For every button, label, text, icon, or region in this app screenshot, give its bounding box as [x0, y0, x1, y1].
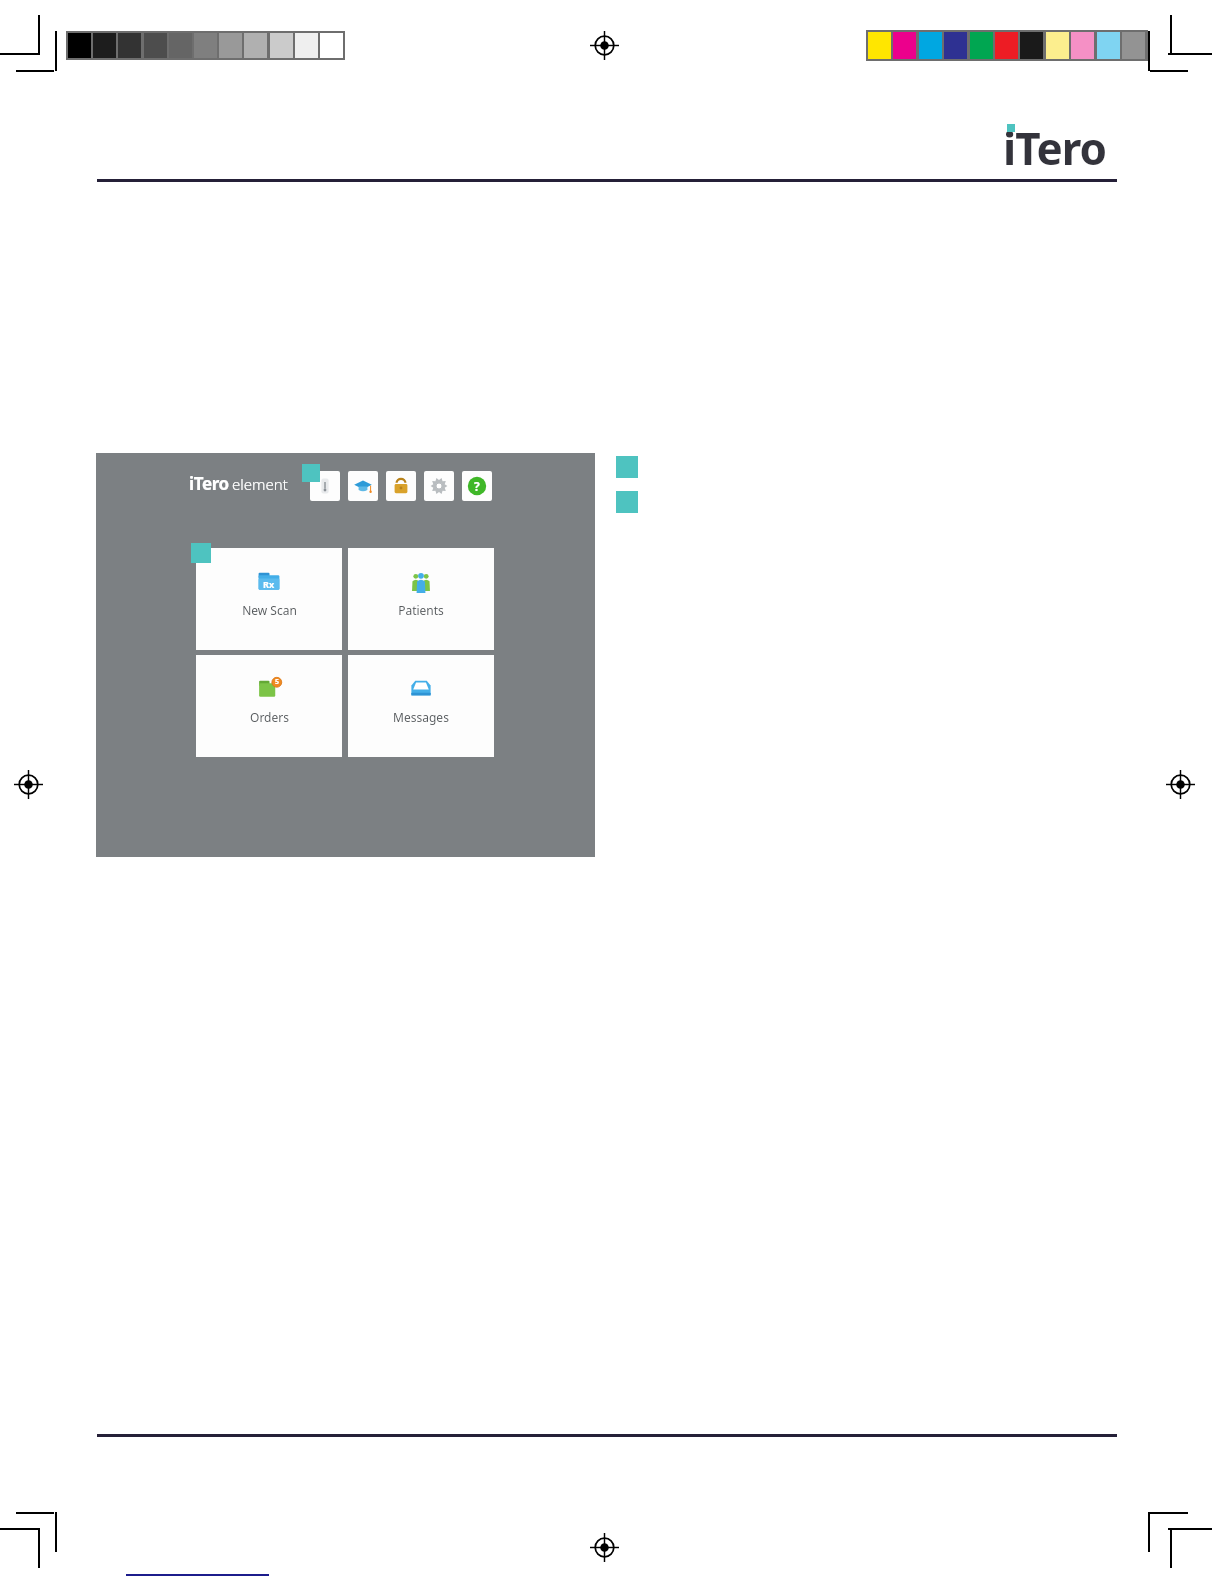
staticText: Patients: [398, 602, 444, 618]
button[interactable]: Patients: [348, 548, 494, 650]
button[interactable]: Wand: [310, 471, 340, 501]
staticText: Orders: [250, 709, 289, 725]
button[interactable]: Help: [462, 471, 492, 501]
staticText: Rx: [263, 578, 275, 590]
staticText: Messages: [393, 709, 449, 725]
staticText: 5: [275, 677, 280, 687]
staticText: element: [232, 474, 288, 494]
button[interactable]: 5: [196, 655, 342, 757]
staticText: iTero: [189, 472, 229, 495]
button[interactable]: Rx: [196, 548, 342, 650]
button[interactable]: Learning: [348, 471, 378, 501]
staticText: iTero: [1003, 118, 1107, 178]
button[interactable]: Messages: [348, 655, 494, 757]
staticText: ?: [474, 478, 480, 494]
staticText: New Scan: [242, 602, 297, 618]
button[interactable]: Lock: [386, 471, 416, 501]
button[interactable]: Settings: [424, 471, 454, 501]
